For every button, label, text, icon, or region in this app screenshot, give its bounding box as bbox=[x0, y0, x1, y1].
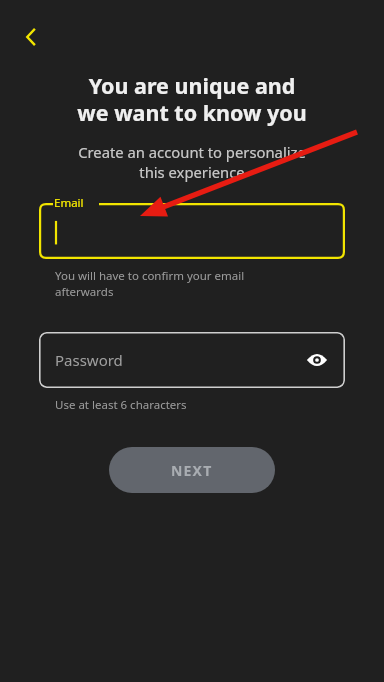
staticText: Create an account to personalize this ex… bbox=[24, 142, 360, 182]
staticText: Use at least 6 characters bbox=[55, 397, 187, 413]
staticText: NEXT bbox=[171, 461, 213, 480]
button[interactable] bbox=[39, 203, 345, 259]
button[interactable]: NEXT bbox=[109, 447, 275, 493]
staticText: Password bbox=[55, 350, 123, 370]
staticText: You will have to confirm your email afte… bbox=[55, 268, 245, 299]
button[interactable]: Back bbox=[12, 18, 50, 56]
button[interactable]: Password bbox=[39, 332, 345, 388]
staticText: Email bbox=[54, 195, 84, 211]
button[interactable]: Show password bbox=[303, 346, 331, 374]
staticText: You are unique and we want to know you bbox=[30, 71, 354, 127]
